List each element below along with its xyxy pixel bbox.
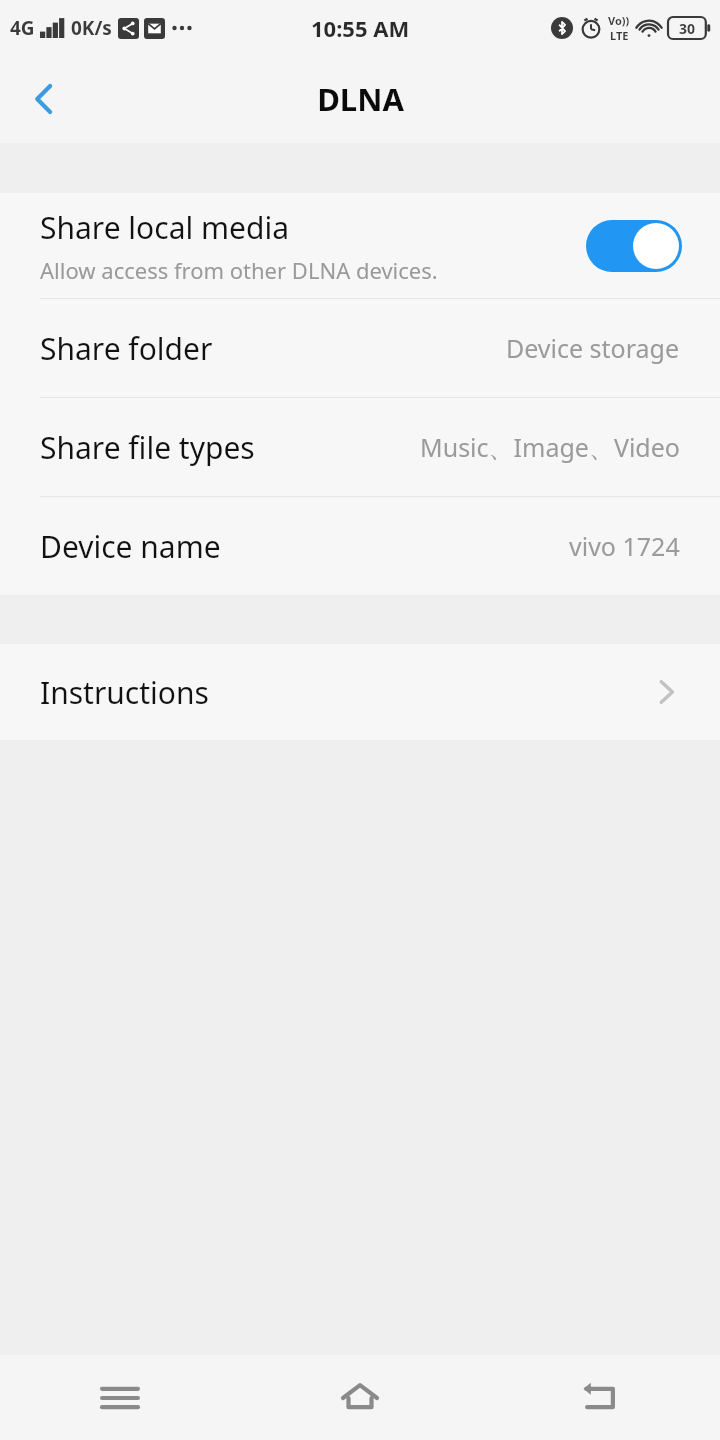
button[interactable]: Instructions: [0, 644, 720, 740]
button[interactable]: Share local media: [0, 193, 720, 298]
button[interactable]: Device name: [0, 497, 720, 595]
button[interactable]: Recent apps: [0, 1355, 240, 1440]
staticText: 10:55 AM: [311, 13, 410, 43]
staticText: Device name: [40, 526, 569, 567]
staticText: Allow access from other DLNA devices.: [40, 255, 438, 285]
button[interactable]: Back: [0, 55, 88, 143]
staticText: Vo)): [608, 13, 630, 28]
staticText: 0K/s: [71, 15, 112, 41]
button[interactable]: Home: [240, 1355, 480, 1440]
staticText: Music、Image、Video: [420, 430, 680, 464]
button[interactable]: Share file types: [0, 398, 720, 496]
staticText: Device storage: [506, 331, 680, 365]
staticText: DLNA: [317, 78, 404, 120]
staticText: Share folder: [40, 328, 506, 369]
staticText: Share file types: [40, 427, 420, 468]
button[interactable]: Back: [480, 1355, 720, 1440]
staticText: Instructions: [40, 672, 658, 713]
staticText: 4G: [10, 15, 35, 41]
button[interactable]: Share folder: [0, 299, 720, 397]
staticText: LTE: [610, 28, 629, 43]
staticText: vivo 1724: [569, 529, 680, 563]
staticText: 30: [679, 19, 696, 38]
button[interactable]: Share local media toggle: [586, 220, 682, 272]
staticText: Share local media: [40, 207, 289, 248]
